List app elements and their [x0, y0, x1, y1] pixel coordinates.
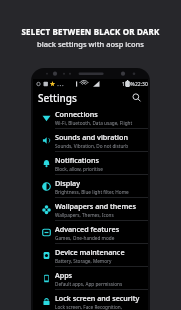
- staticText: black settings with aosp icons: [37, 39, 144, 49]
- staticText: SELECT BETWEEN BLACK OR DARK: [21, 26, 160, 37]
- button[interactable]: Apps: [33, 267, 148, 289]
- staticText: 22:30: [135, 81, 148, 88]
- button[interactable]: Lock screen and security: [33, 290, 148, 310]
- staticText: Wallpapers and themes: [55, 201, 136, 211]
- staticText: Default apps, App permissions: [55, 281, 123, 287]
- staticText: Apps: [55, 270, 73, 280]
- staticText: Lock screen and security: [55, 293, 140, 303]
- button[interactable]: Search: [130, 91, 143, 104]
- staticText: Device maintenance: [55, 247, 125, 257]
- staticText: Lock screen, Face Recognition, Fingerpri…: [55, 304, 143, 310]
- button[interactable]: Device maintenance: [33, 244, 148, 266]
- staticText: Sounds and vibration: [55, 132, 128, 142]
- staticText: Brightness, Blue light filter, Home scre…: [55, 189, 143, 195]
- button[interactable]: Wallpapers and themes: [33, 198, 148, 220]
- staticText: Sounds, Vibration, Do not disturb: [55, 143, 129, 149]
- staticText: Block, allow, prioritise: [55, 166, 103, 172]
- staticText: Notifications: [55, 155, 99, 165]
- button[interactable]: Notifications: [33, 152, 148, 174]
- staticText: Connections: [55, 109, 98, 119]
- staticText: Games, One-handed mode: [55, 235, 115, 241]
- staticText: Battery, Storage, Memory: [55, 258, 112, 264]
- staticText: Display: [55, 178, 80, 188]
- staticText: Advanced features: [55, 224, 120, 234]
- staticText: Wi-Fi, Bluetooth, Data usage, Flight mod…: [55, 120, 143, 126]
- button[interactable]: Advanced features: [33, 221, 148, 243]
- staticText: Settings: [38, 91, 77, 105]
- button[interactable]: Sounds and vibration: [33, 129, 148, 151]
- staticText: 100%: [122, 81, 135, 88]
- button[interactable]: Display: [33, 175, 148, 197]
- button[interactable]: Connections: [33, 106, 148, 128]
- staticText: Wallpapers, Themes, Icons: [55, 212, 114, 218]
